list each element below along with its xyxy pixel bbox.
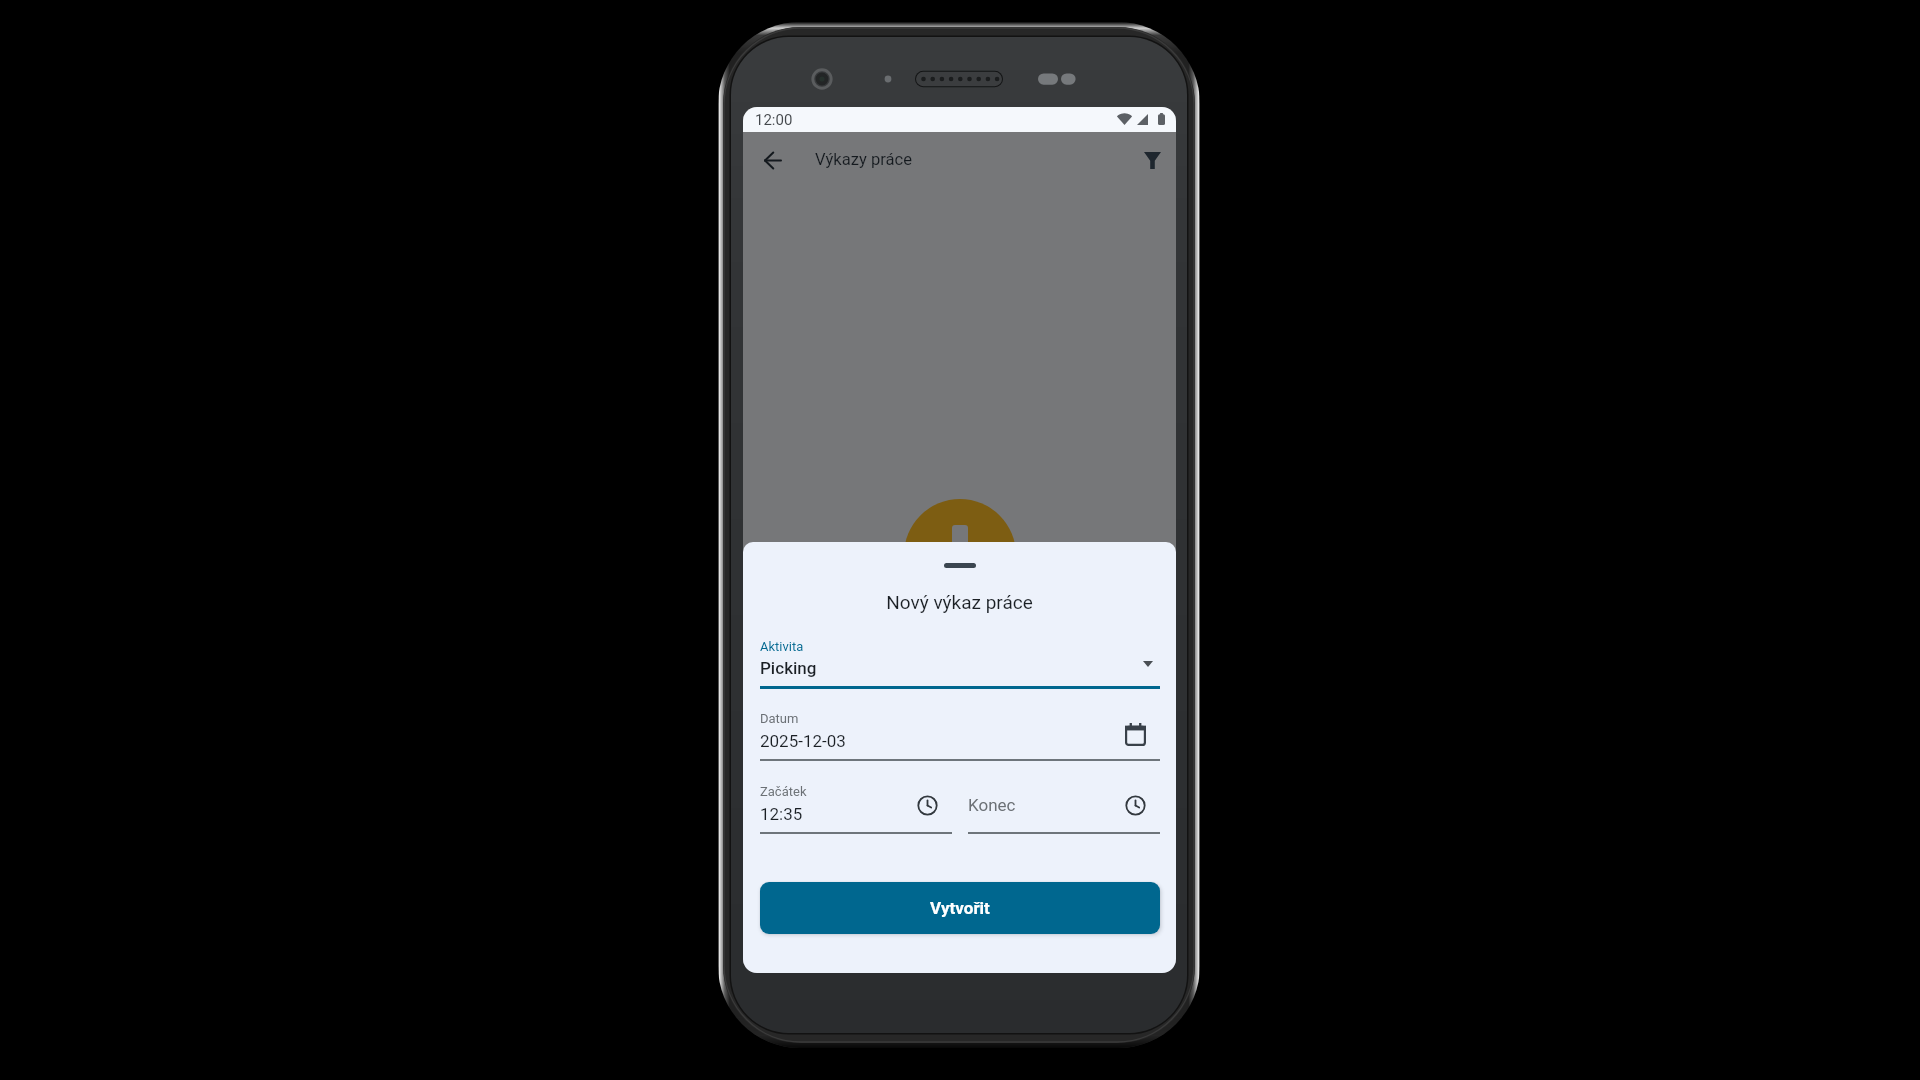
staticText: Picking [760, 658, 817, 678]
button[interactable]: Přidat [904, 499, 1016, 611]
staticText: Začátek [760, 784, 807, 799]
staticText: Konec [968, 795, 1016, 815]
button[interactable]: Konec [968, 780, 1160, 836]
button[interactable]: Datum [760, 707, 1160, 763]
staticText: Datum [760, 711, 799, 726]
staticText: 12:00 [755, 111, 793, 129]
button[interactable]: Začátek [760, 780, 952, 836]
button[interactable]: Vytvořit [760, 882, 1160, 934]
staticText: Vytvořit [930, 898, 990, 918]
staticText: Výkazy práce [815, 150, 913, 169]
staticText: 12:35 [760, 804, 803, 824]
staticText: Aktivita [760, 639, 804, 654]
button[interactable]: Zpět [747, 135, 797, 185]
staticText: Nový výkaz práce [743, 591, 1176, 613]
button[interactable]: Filtr [1130, 138, 1174, 182]
staticText: 2025-12-03 [760, 731, 846, 751]
button[interactable]: Aktivita [760, 634, 1160, 692]
